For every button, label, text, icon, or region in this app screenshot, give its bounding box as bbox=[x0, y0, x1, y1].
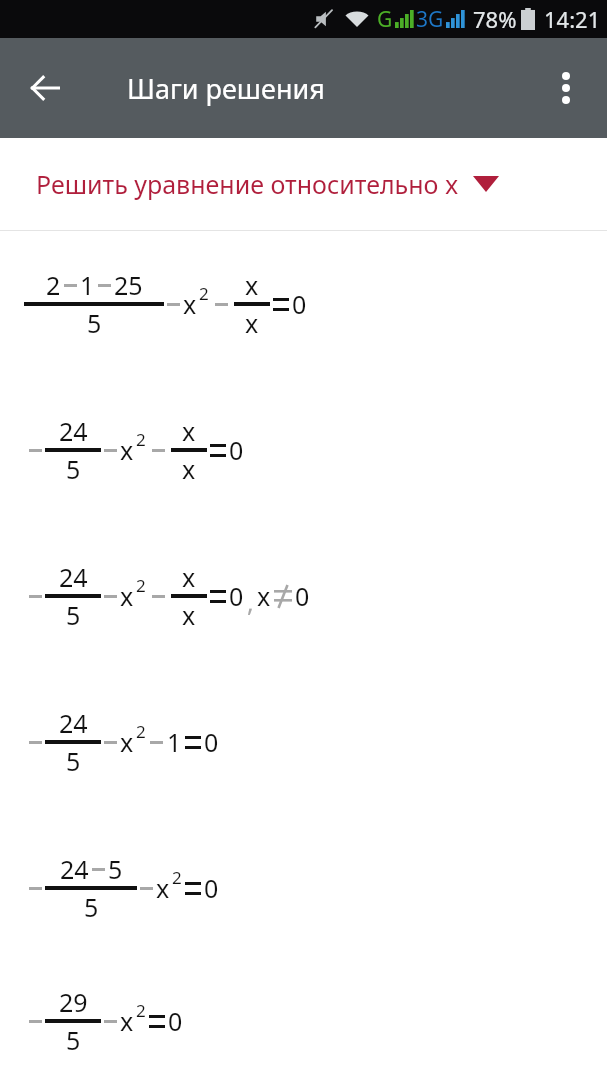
staticText: x bbox=[120, 579, 134, 613]
staticText: 2 bbox=[136, 999, 146, 1022]
staticText: 5 bbox=[87, 306, 102, 340]
staticText: 0 bbox=[168, 1004, 183, 1038]
staticText: 0 bbox=[204, 871, 219, 905]
staticText: 5 bbox=[66, 452, 81, 486]
staticText: 24 bbox=[59, 706, 88, 740]
staticText: x bbox=[120, 725, 134, 759]
staticText: x bbox=[245, 306, 259, 340]
staticText: 0 bbox=[229, 579, 244, 613]
staticText: 0 bbox=[229, 433, 244, 467]
staticText: 0 bbox=[295, 579, 310, 613]
staticText: x bbox=[182, 452, 196, 486]
staticText: 78% bbox=[473, 4, 517, 34]
staticText: x bbox=[183, 287, 197, 321]
staticText: 0 bbox=[292, 287, 307, 321]
staticText: 1 bbox=[80, 268, 95, 302]
staticText: Решить уравнение относительно x bbox=[36, 167, 459, 201]
staticText: 29 bbox=[59, 985, 88, 1019]
staticText: 2 bbox=[136, 720, 146, 743]
button[interactable]: More options bbox=[537, 59, 595, 117]
staticText: x bbox=[182, 414, 196, 448]
staticText: x bbox=[156, 871, 170, 905]
staticText: G bbox=[377, 5, 393, 34]
staticText: 5 bbox=[66, 1023, 81, 1057]
staticText: 24 bbox=[60, 852, 89, 886]
staticText: 2 bbox=[136, 574, 146, 597]
staticText: 5 bbox=[108, 852, 123, 886]
staticText: x bbox=[182, 560, 196, 594]
staticText: 3G bbox=[416, 5, 444, 34]
staticText: x bbox=[245, 268, 259, 302]
staticText: 2 bbox=[172, 866, 182, 889]
button[interactable]: Решить уравнение относительно x bbox=[0, 138, 607, 230]
staticText: 2 bbox=[199, 282, 209, 305]
staticText: 5 bbox=[66, 744, 81, 778]
button[interactable]: Back bbox=[14, 57, 76, 119]
staticText: 2 bbox=[46, 268, 61, 302]
staticText: 24 bbox=[59, 414, 88, 448]
staticText: 14:21 bbox=[544, 4, 601, 34]
staticText: 1 bbox=[167, 725, 182, 759]
staticText: 2 bbox=[136, 428, 146, 451]
staticText: x bbox=[182, 598, 196, 632]
staticText: 5 bbox=[84, 890, 99, 924]
staticText: x bbox=[120, 1004, 134, 1038]
staticText: Шаги решения bbox=[127, 70, 325, 107]
staticText: 25 bbox=[114, 268, 143, 302]
staticText: 24 bbox=[59, 560, 88, 594]
staticText: x bbox=[257, 579, 271, 613]
staticText: 0 bbox=[204, 725, 219, 759]
staticText: x bbox=[120, 433, 134, 467]
staticText: 5 bbox=[66, 598, 81, 632]
staticText: , bbox=[247, 585, 254, 619]
